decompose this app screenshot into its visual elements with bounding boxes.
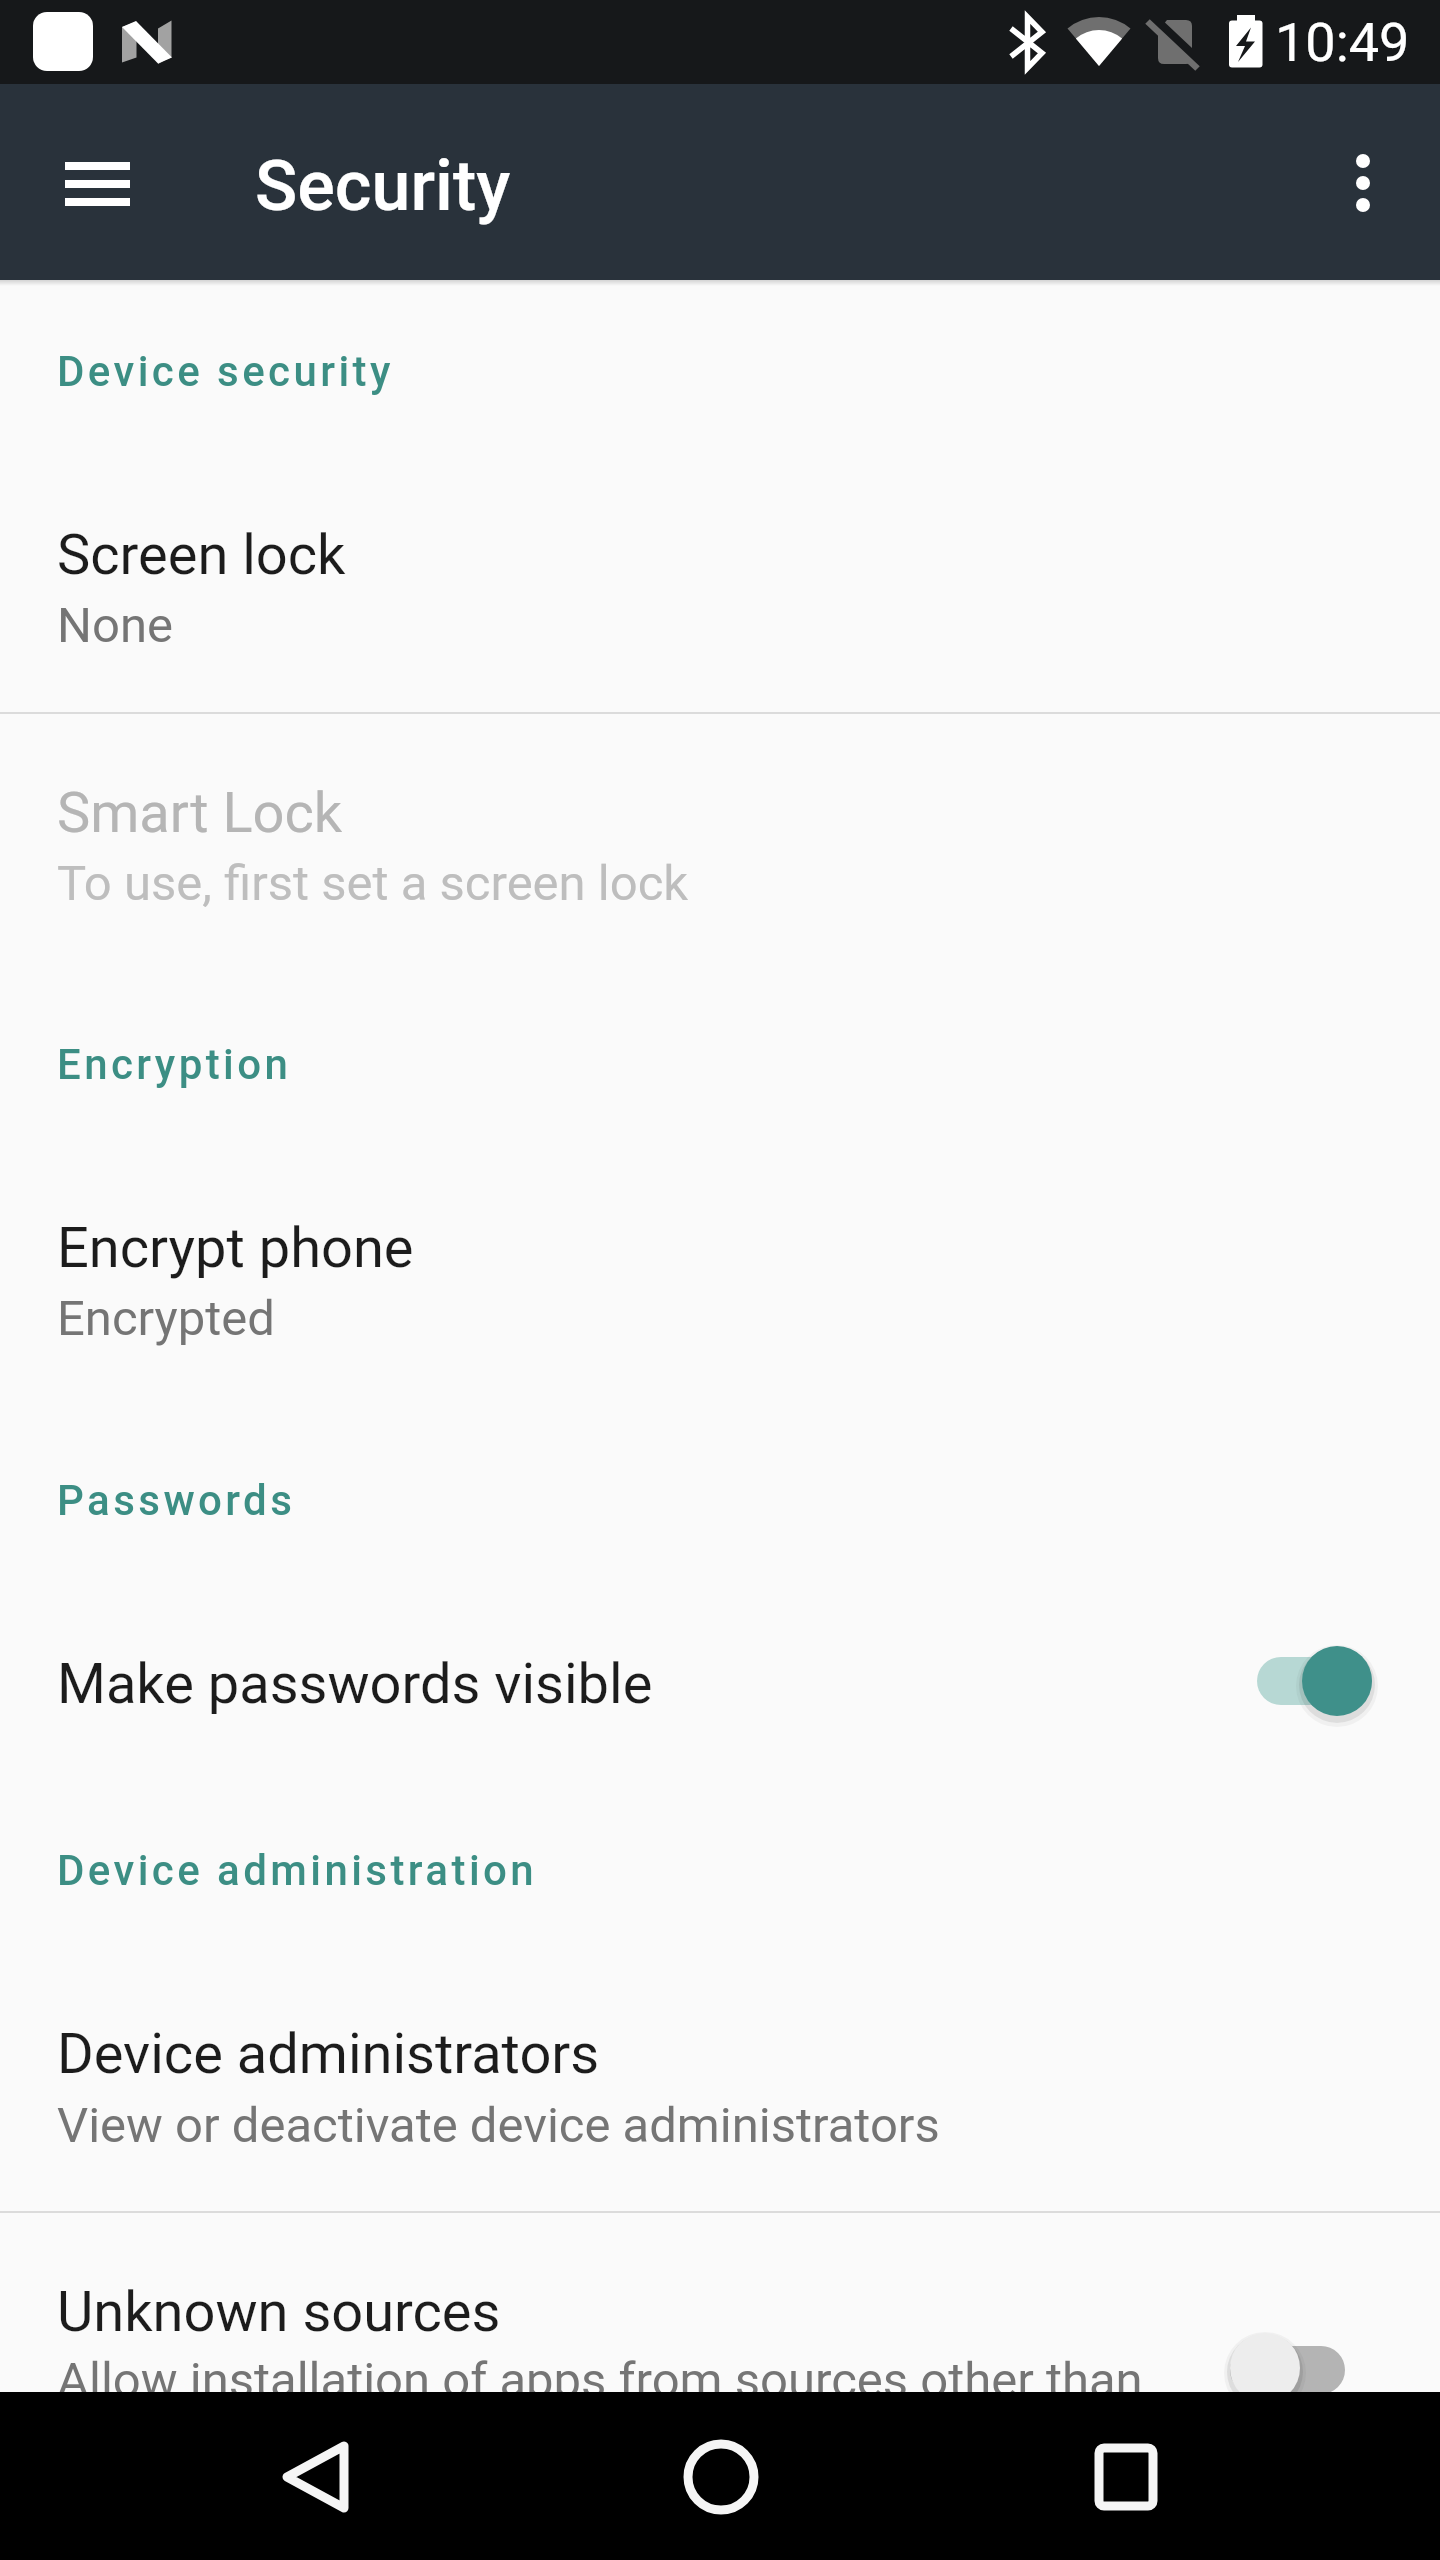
staticText: View or deactivate device administrators xyxy=(57,2097,940,2154)
button[interactable] xyxy=(0,1150,1440,1410)
button[interactable] xyxy=(1190,2308,1420,2428)
button[interactable] xyxy=(1217,1621,1440,1741)
staticText: Screen lock xyxy=(57,522,346,588)
staticText: Encrypt phone xyxy=(57,1215,414,1281)
button[interactable] xyxy=(0,1560,1440,1810)
button[interactable] xyxy=(1305,125,1421,241)
staticText: 10:49 xyxy=(1275,11,1410,74)
button[interactable] xyxy=(0,460,1440,713)
button[interactable] xyxy=(0,1955,1440,2212)
staticText: Device administration xyxy=(57,1846,538,1895)
staticText: None xyxy=(57,597,173,654)
button[interactable] xyxy=(40,134,156,232)
staticText: Make passwords visible xyxy=(57,1651,653,1717)
button[interactable] xyxy=(0,2213,1440,2392)
staticText: Encryption xyxy=(57,1040,292,1089)
staticText: Allow installation of apps from sources … xyxy=(57,2352,1143,2409)
staticText: Device security xyxy=(57,347,394,396)
button[interactable] xyxy=(636,2392,806,2560)
staticText: Passwords xyxy=(57,1476,296,1525)
staticText: Security xyxy=(255,145,511,227)
staticText: Unknown sources xyxy=(57,2279,501,2345)
staticText: Device administrators xyxy=(57,2021,600,2087)
staticText: Smart Lock xyxy=(57,780,343,846)
button[interactable] xyxy=(232,2392,402,2560)
staticText: To use, first set a screen lock xyxy=(57,855,689,912)
button[interactable] xyxy=(1041,2392,1211,2560)
staticText: Encrypted xyxy=(57,1290,275,1347)
